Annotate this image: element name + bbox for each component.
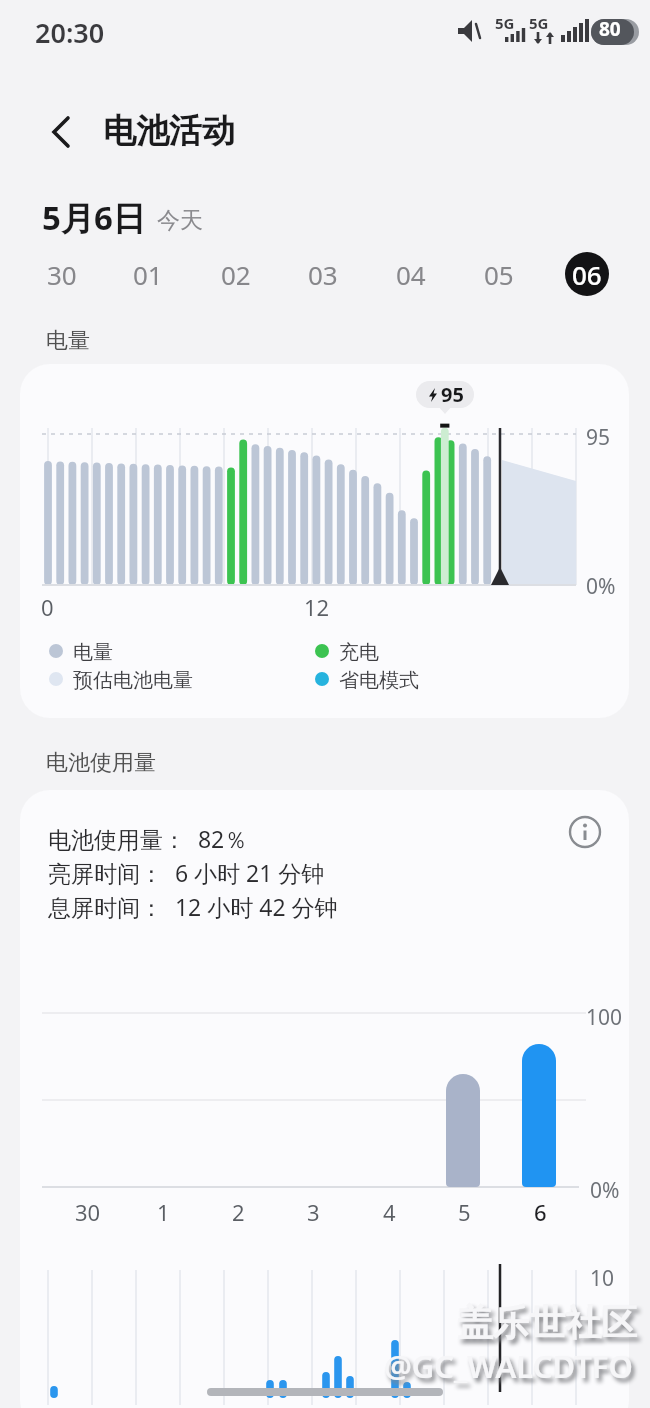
staticText: 05 [484,257,514,292]
button[interactable] [40,105,90,155]
staticText: 5G [529,13,549,33]
staticText: 95 [586,423,611,452]
button[interactable]: 06 [565,252,609,296]
staticText: 30 [75,1197,101,1227]
staticText: 12 [304,592,330,622]
staticText: 1 [157,1197,170,1227]
button[interactable]: 01 [118,252,178,296]
staticText: 0% [590,1176,620,1205]
staticText: 30 [47,257,77,292]
staticText: 充电 [339,640,379,662]
staticText: 80 [599,16,621,42]
staticText: 04 [396,257,426,292]
staticText: 0% [586,572,616,601]
button[interactable]: 03 [293,252,353,296]
staticText: 06 [572,257,602,292]
staticText: 02 [221,257,251,292]
staticText: 5G [495,13,515,33]
staticText: 0 [41,592,54,622]
button[interactable]: 02 [206,252,266,296]
staticText: @GC_WALCDTFO [384,1345,633,1387]
staticText: 01 [133,257,163,292]
staticText: 2 [232,1197,245,1227]
staticText: 预估电池电量 [73,668,193,690]
staticText: 100 [586,1003,623,1032]
staticText: 电量 [46,327,90,355]
staticText: 4 [383,1197,396,1227]
staticText: 电池活动 [103,110,235,152]
staticText: 电池使用量 [46,749,156,777]
staticText: 息屏时间： 12 小时 42 分钟 [48,891,338,922]
staticText: 95 [441,381,464,408]
staticText: 盖乐世社区 [457,1300,637,1345]
staticText: 03 [308,257,338,292]
button[interactable]: 05 [469,252,529,296]
staticText: 10 [590,1264,615,1293]
button[interactable]: 04 [381,252,441,296]
button[interactable] [565,812,605,852]
staticText: 5月6日 [42,195,146,240]
staticText: 今天 [157,206,203,235]
staticText: 电池使用量： 82％ [48,823,248,854]
staticText: 20:30 [35,14,105,51]
staticText: 亮屏时间： 6 小时 21 分钟 [48,857,325,888]
staticText: 省电模式 [339,668,419,690]
staticText: 6 [534,1197,547,1227]
staticText: 5 [458,1197,471,1227]
staticText: 电量 [73,640,113,662]
staticText: 3 [307,1197,320,1227]
button[interactable]: 30 [32,252,92,296]
